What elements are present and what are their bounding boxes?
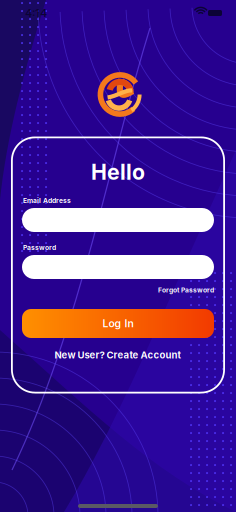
staticText: Email Address <box>23 196 71 205</box>
button[interactable]: New User? Create Account <box>12 349 224 361</box>
staticText: New User? Create Account <box>54 349 181 361</box>
staticText: Hello <box>91 159 145 185</box>
staticText: Log In <box>102 317 133 330</box>
staticText: 4:14 <box>25 6 47 19</box>
staticText: Forgot Password <box>158 286 214 294</box>
button[interactable]: Forgot Password <box>114 286 214 294</box>
staticText: Password <box>23 243 56 252</box>
button[interactable]: Log In <box>22 309 214 338</box>
